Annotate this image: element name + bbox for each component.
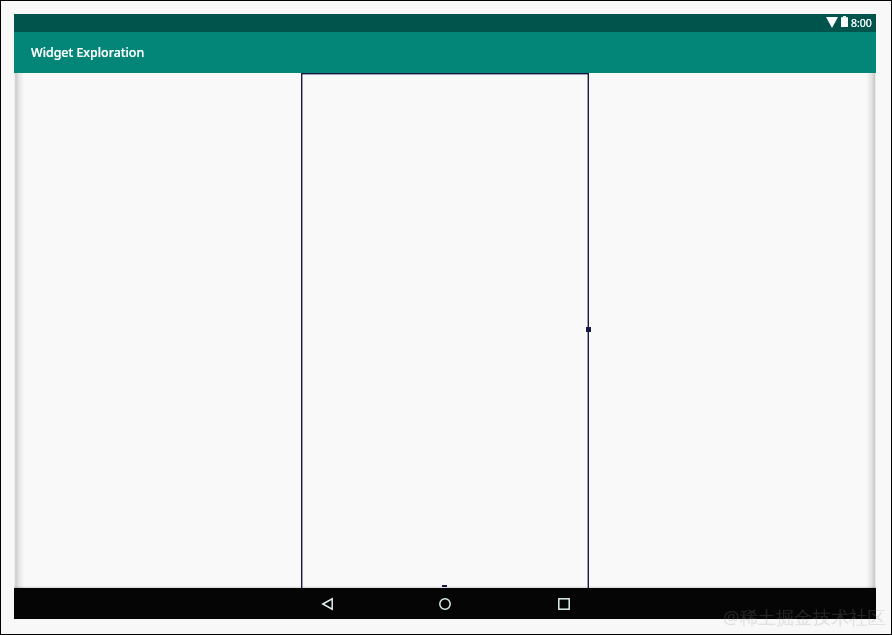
button[interactable]: Back	[303, 588, 351, 619]
button[interactable]: Widget container	[301, 73, 589, 588]
button[interactable]: Recent apps	[540, 588, 588, 619]
button[interactable]: Home	[421, 588, 469, 619]
staticText: @稀土掘金技术社区	[723, 604, 886, 629]
staticText: 8:00	[851, 16, 872, 30]
staticText: Widget Exploration	[31, 44, 145, 61]
